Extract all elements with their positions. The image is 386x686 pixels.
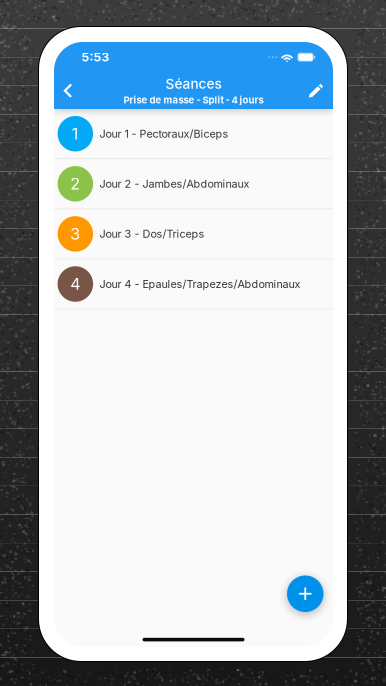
button[interactable]: Add [287,575,323,612]
button[interactable]: 3 [54,209,333,259]
staticText: 3 [70,224,80,244]
staticText: 1 [72,124,79,143]
staticText: Jour 2 - Jambes/Abdominaux [99,177,249,190]
button[interactable]: 2 [54,159,333,209]
staticText: 5:53 [81,50,109,64]
button[interactable]: 1 [54,109,333,159]
staticText: Jour 1 - Pectoraux/Biceps [99,127,228,140]
staticText: 4 [70,274,80,294]
button[interactable]: Back [55,71,81,111]
button[interactable]: 4 [54,259,333,309]
staticText: Jour 3 - Dos/Triceps [99,227,204,240]
staticText: Séances [165,76,221,92]
staticText: Prise de masse - Split - 4 jours [123,94,263,106]
button[interactable]: Edit [302,71,330,111]
staticText: Jour 4 - Epaules/Trapezes/Abdominaux [99,277,300,291]
staticText: 2 [70,174,80,193]
